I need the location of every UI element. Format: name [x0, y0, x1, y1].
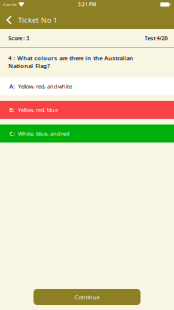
- staticText: Yellow, red, and white: [18, 82, 72, 90]
- staticText: Test 4/20: [145, 34, 168, 42]
- staticText: Carrier: [3, 2, 17, 7]
- button[interactable]: Continue: [33, 289, 140, 305]
- staticText: White, blue, and red: [18, 130, 69, 137]
- staticText: Yellow, red, blue: [18, 106, 58, 114]
- staticText: 3:21 PM: [78, 1, 96, 8]
- button[interactable]: C:: [0, 124, 174, 142]
- button[interactable]: Ticket No 1: [0, 13, 57, 27]
- button[interactable]: B:: [0, 101, 174, 119]
- staticText: 4 : What colours are there in the Austra…: [8, 54, 133, 70]
- staticText: Ticket No 1: [18, 15, 57, 25]
- staticText: C:: [9, 130, 15, 137]
- staticText: Continue: [74, 293, 99, 301]
- staticText: Score : 3: [8, 34, 29, 42]
- staticText: B:: [9, 106, 15, 114]
- button[interactable]: A:: [0, 77, 174, 95]
- staticText: A:: [9, 82, 15, 90]
